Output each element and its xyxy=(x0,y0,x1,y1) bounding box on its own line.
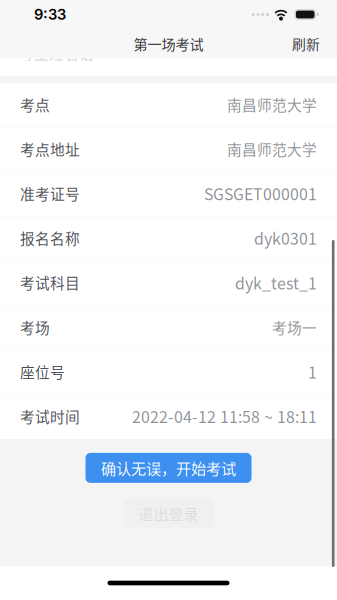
staticText: 第一场考试 xyxy=(133,33,203,54)
staticText: 刷新 xyxy=(292,33,320,54)
staticText: 考生姓名语 xyxy=(19,42,94,64)
button[interactable]: 退出登录 xyxy=(123,499,213,528)
staticText: 2022-04-12 11:58 ~ 18:11 xyxy=(132,405,317,428)
staticText: SGSGET000001 xyxy=(204,182,317,205)
staticText: 南昌师范大学 xyxy=(227,94,317,115)
staticText: 准考证号 xyxy=(20,183,80,204)
staticText: 南昌师范大学 xyxy=(227,138,317,159)
staticText: dyk0301 xyxy=(254,226,317,249)
staticText: 座位号 xyxy=(20,361,65,382)
staticText: 报名名称 xyxy=(20,227,80,248)
button[interactable]: 刷新 xyxy=(284,29,328,58)
staticText: 考试科目 xyxy=(20,272,80,293)
staticText: 考场 xyxy=(20,316,50,338)
staticText: 考场一 xyxy=(272,316,317,338)
staticText: 考点 xyxy=(20,94,50,115)
staticText: 考点地址 xyxy=(20,138,80,159)
staticText: 9:33 xyxy=(34,6,66,23)
staticText: 1 xyxy=(308,360,317,383)
staticText: dyk_test_1 xyxy=(235,271,317,294)
staticText: 确认无误，开始考试 xyxy=(101,457,236,479)
staticText: 考试时间 xyxy=(20,405,80,427)
staticText: 退出登录 xyxy=(138,503,198,524)
button[interactable]: 确认无误，开始考试 xyxy=(85,453,251,483)
